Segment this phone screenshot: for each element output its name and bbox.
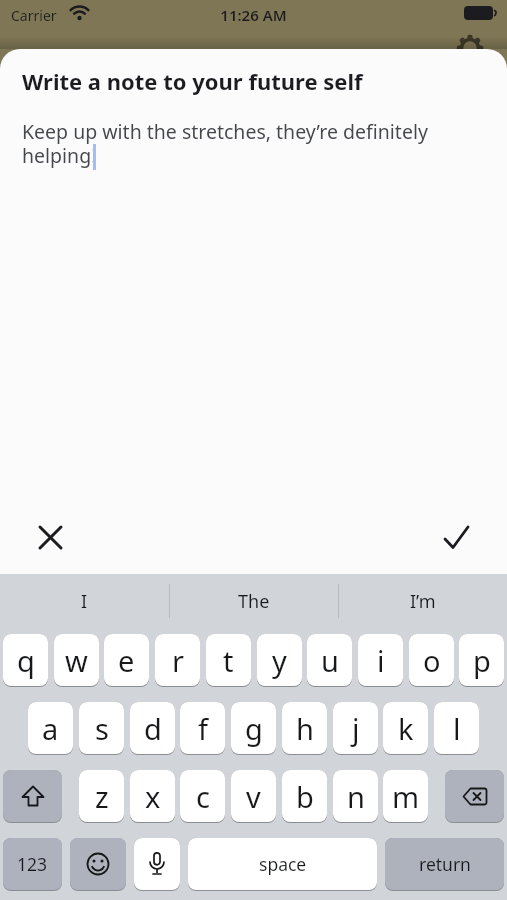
button[interactable]	[445, 770, 504, 822]
button[interactable]: return	[385, 838, 504, 890]
staticText: Write a note to your future self	[22, 66, 363, 96]
staticText: e	[118, 641, 135, 680]
staticText: y	[272, 641, 287, 680]
button[interactable]: f	[180, 702, 225, 754]
button[interactable]: p	[459, 634, 504, 686]
button[interactable]: r	[155, 634, 200, 686]
staticText: Carrier	[11, 6, 57, 25]
staticText: p	[473, 641, 491, 680]
button[interactable]: The	[170, 574, 338, 628]
button[interactable]: i	[358, 634, 403, 686]
staticText: I’m	[410, 589, 436, 614]
button[interactable]: I’m	[339, 574, 507, 628]
staticText: 11:26 AM	[0, 5, 507, 25]
button[interactable]	[70, 838, 126, 890]
staticText: r	[172, 641, 184, 680]
button[interactable]	[134, 838, 180, 890]
staticText: space	[259, 852, 307, 876]
button[interactable]: n	[333, 770, 378, 822]
button[interactable]: g	[231, 702, 276, 754]
button[interactable]: a	[28, 702, 73, 754]
staticText: Keep up with the stretches, they’re defi…	[22, 118, 428, 169]
staticText: x	[145, 777, 161, 816]
button[interactable]: j	[333, 702, 378, 754]
button[interactable]: t	[206, 634, 251, 686]
staticText: w	[65, 641, 88, 680]
button[interactable]: h	[282, 702, 327, 754]
button[interactable]	[434, 515, 478, 559]
button[interactable]: I	[0, 574, 169, 628]
staticText: d	[144, 709, 162, 748]
button[interactable]: e	[104, 634, 149, 686]
staticText: o	[423, 641, 441, 680]
button[interactable]	[3, 770, 62, 822]
staticText: h	[296, 709, 314, 748]
button[interactable]: x	[130, 770, 175, 822]
button[interactable]: z	[79, 770, 124, 822]
button[interactable]: k	[383, 702, 428, 754]
staticText: q	[17, 641, 35, 680]
button[interactable]: c	[180, 770, 225, 822]
button[interactable]: w	[54, 634, 99, 686]
staticText: t	[223, 641, 234, 680]
button[interactable]	[28, 515, 72, 559]
button[interactable]: y	[257, 634, 302, 686]
button[interactable]	[455, 33, 485, 63]
button[interactable]: o	[409, 634, 454, 686]
staticText: f	[198, 709, 208, 748]
staticText: j	[352, 709, 360, 748]
button[interactable]: space	[188, 838, 377, 890]
staticText: g	[245, 709, 263, 748]
staticText: n	[347, 777, 365, 816]
button[interactable]: m	[383, 770, 428, 822]
staticText: k	[398, 709, 414, 748]
button[interactable]: q	[3, 634, 48, 686]
staticText: 123	[17, 852, 48, 876]
staticText: The	[238, 589, 270, 614]
staticText: m	[392, 777, 420, 816]
button[interactable]: b	[282, 770, 327, 822]
staticText: i	[377, 641, 385, 680]
button[interactable]: u	[307, 634, 352, 686]
staticText: b	[296, 777, 314, 816]
staticText: I	[81, 589, 88, 614]
button[interactable]: s	[79, 702, 124, 754]
staticText: z	[95, 777, 109, 816]
staticText: c	[196, 777, 210, 816]
button[interactable]: l	[434, 702, 479, 754]
staticText: a	[42, 709, 59, 748]
button[interactable]: v	[231, 770, 276, 822]
staticText: s	[95, 709, 109, 748]
staticText: v	[246, 777, 261, 816]
button[interactable]: d	[130, 702, 175, 754]
button[interactable]: 123	[3, 838, 62, 890]
staticText: l	[453, 709, 461, 748]
staticText: return	[419, 852, 471, 876]
staticText: u	[321, 641, 339, 680]
